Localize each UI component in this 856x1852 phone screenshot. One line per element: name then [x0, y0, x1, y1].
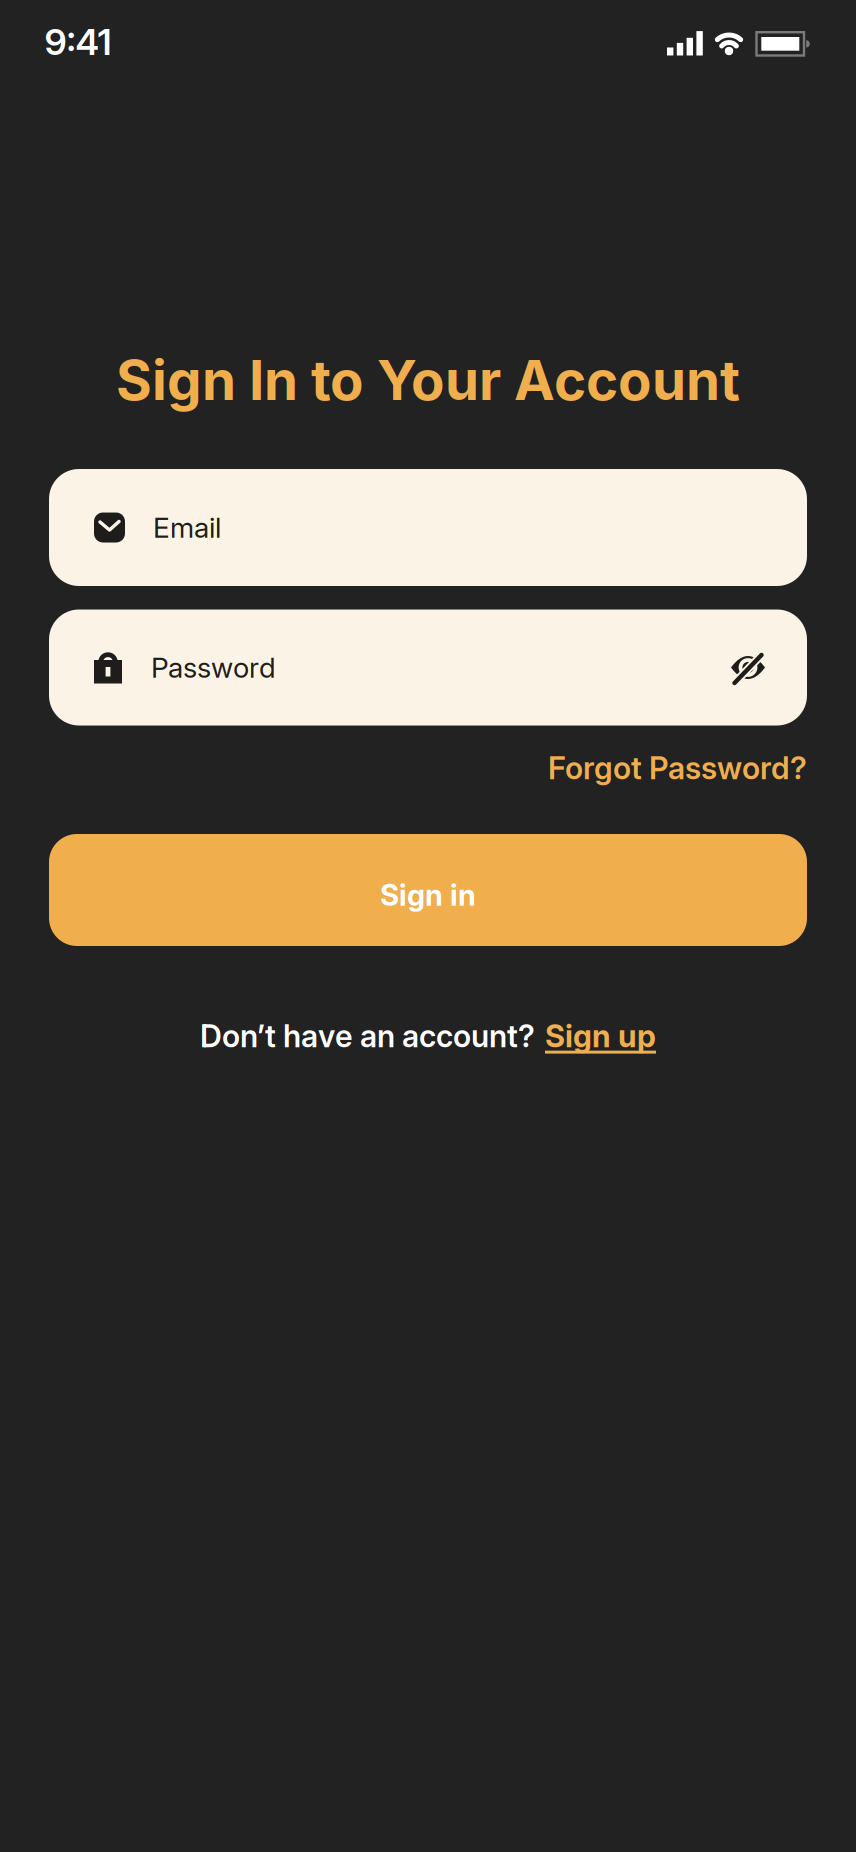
staticText: Email [153, 511, 221, 544]
button[interactable]: Password [49, 609, 807, 725]
staticText: 9:41 [44, 20, 111, 64]
staticText: Forgot Password? [548, 749, 807, 786]
button[interactable]: Forgot Password? [548, 749, 807, 786]
button[interactable]: Sign in [49, 834, 807, 946]
button[interactable]: Email [49, 469, 807, 586]
staticText: Don’t have an account? [200, 1017, 535, 1054]
staticText: Password [151, 651, 276, 684]
button[interactable] [731, 650, 765, 684]
button[interactable]: Sign up [545, 1017, 656, 1054]
staticText: Sign In to Your Account [116, 347, 740, 413]
staticText: Sign up [545, 1017, 656, 1054]
staticText: Sign in [380, 877, 476, 913]
